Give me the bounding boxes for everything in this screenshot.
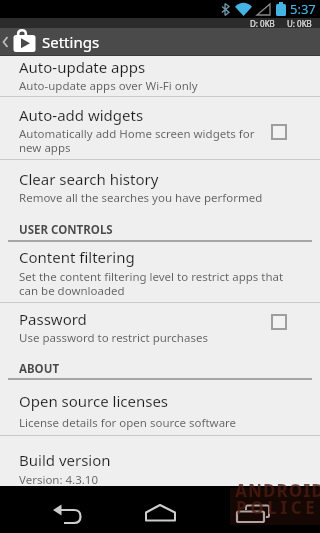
button[interactable]: Auto-update apps [0,56,320,97]
staticText: Auto-update apps over Wi-Fi only [19,78,316,94]
staticText: Remove all the searches you have perform… [19,190,316,206]
staticText: Build version [19,450,111,470]
staticText: USER CONTROLS [19,222,113,238]
staticText: Open source licenses [19,391,169,411]
button[interactable]: Build version [0,436,320,486]
staticText: Use password to restrict purchases [19,330,267,346]
button[interactable]: Open source licenses [0,380,320,436]
button[interactable]: Content filtering [0,242,320,303]
staticText: Automatically add Home screen widgets fo… [19,126,261,155]
button[interactable] [213,486,320,533]
staticText: Set the content filtering level to restr… [19,269,305,298]
staticText: Content filtering [19,247,135,267]
button[interactable]: Auto-add widgets [0,97,320,160]
staticText: ANDROID [235,479,320,502]
staticText: Auto-add widgets [19,105,144,125]
button[interactable]: Password [0,303,320,352]
button[interactable]: Clear search history [0,160,320,210]
staticText: 5:37 [290,0,316,18]
button[interactable]: Settings [0,28,320,56]
staticText: Auto-update apps [19,57,146,77]
staticText: Password [19,309,87,329]
staticText: Settings [42,32,100,52]
staticText: POLICE [236,496,319,519]
button[interactable] [106,486,213,533]
staticText: ABOUT [19,361,60,377]
staticText: Version: 4.3.10 [19,472,316,486]
staticText: U: 0KB [287,18,312,28]
staticText: D: 0KB [250,18,275,28]
button[interactable] [0,486,106,533]
staticText: Clear search history [19,169,159,189]
staticText: License details for open source software [19,415,316,431]
